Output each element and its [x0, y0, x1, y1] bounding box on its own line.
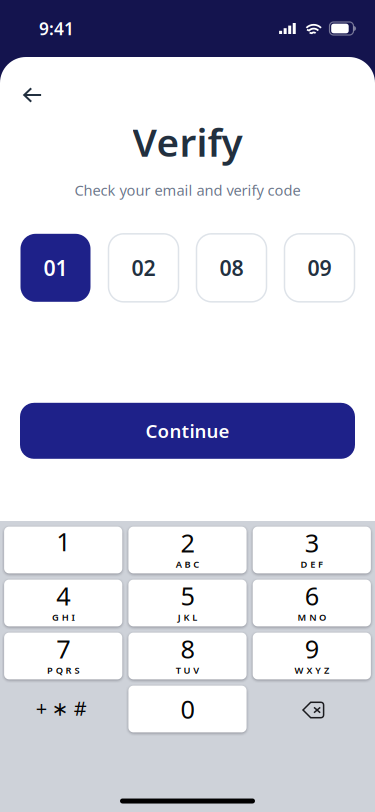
button[interactable]: 1 — [4, 527, 122, 573]
staticText: 8 — [180, 632, 194, 665]
button[interactable]: 3 — [253, 527, 371, 573]
staticText: + ∗ # — [36, 695, 87, 721]
button[interactable]: 5 — [128, 580, 247, 626]
staticText: 5 — [180, 579, 194, 612]
button[interactable]: 08 — [196, 234, 266, 302]
staticText: 2 — [180, 526, 194, 559]
staticText: WXYZ — [295, 664, 329, 676]
button[interactable]: Symbols — [4, 686, 122, 732]
staticText: 4 — [56, 579, 70, 612]
staticText: 9:41 — [39, 17, 74, 40]
button[interactable]: 6 — [253, 580, 371, 626]
button[interactable]: Back — [0, 75, 56, 115]
staticText: 02 — [131, 254, 155, 282]
staticText: ABC — [176, 558, 199, 570]
staticText: 6 — [305, 579, 319, 612]
staticText: 0 — [180, 692, 194, 726]
staticText: PQRS — [47, 664, 79, 676]
staticText: JKL — [178, 611, 197, 623]
button[interactable]: 4 — [4, 580, 122, 626]
staticText: TUV — [176, 664, 199, 676]
button[interactable]: Continue — [20, 403, 355, 459]
staticText: 1 — [56, 525, 70, 558]
button[interactable]: 09 — [284, 234, 354, 302]
staticText: 9 — [305, 632, 319, 665]
button[interactable]: 01 — [20, 234, 90, 302]
staticText: 7 — [56, 632, 70, 665]
button[interactable]: 8 — [128, 633, 247, 679]
staticText: DEF — [300, 558, 323, 570]
staticText: 08 — [219, 254, 243, 282]
staticText: Check your email and verify code — [74, 180, 300, 200]
button[interactable]: 02 — [108, 234, 178, 302]
staticText: GHI — [52, 611, 74, 623]
button[interactable]: Delete — [253, 686, 371, 732]
button[interactable]: 9 — [253, 633, 371, 679]
staticText: 3 — [305, 526, 319, 559]
button[interactable]: 2 — [128, 527, 247, 573]
staticText: 09 — [307, 254, 331, 282]
button[interactable]: 7 — [4, 633, 122, 679]
button[interactable]: 0 — [128, 686, 247, 732]
staticText: Verify — [132, 116, 242, 167]
staticText: Continue — [145, 418, 229, 443]
staticText: 01 — [43, 254, 67, 282]
staticText: MNO — [297, 611, 326, 623]
